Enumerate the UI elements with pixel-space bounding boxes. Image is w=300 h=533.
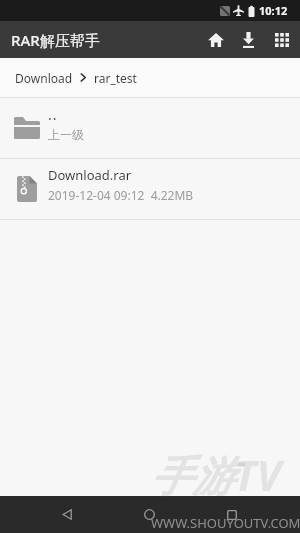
- button[interactable]: Download.rar: [0, 159, 300, 219]
- staticText: Download.rar: [48, 166, 132, 184]
- staticText: 10:12: [259, 3, 288, 18]
- button[interactable]: [265, 21, 298, 58]
- staticText: WWW.SHOUYOUTV.COM: [151, 514, 300, 532]
- button[interactable]: Download: [0, 58, 300, 97]
- button[interactable]: [199, 21, 232, 58]
- button[interactable]: ..: [0, 98, 300, 158]
- staticText: 2019-12-04 09:12 4.22MB: [48, 187, 194, 203]
- button[interactable]: [232, 21, 265, 58]
- button[interactable]: [215, 496, 249, 533]
- button[interactable]: [50, 496, 84, 533]
- staticText: rar_test: [94, 70, 137, 86]
- staticText: ..: [48, 105, 58, 124]
- button[interactable]: [132, 496, 166, 533]
- staticText: 手游TV: [150, 446, 282, 503]
- staticText: 上一级: [48, 127, 84, 142]
- staticText: Download: [15, 70, 73, 86]
- staticText: RAR解压帮手: [11, 30, 100, 50]
